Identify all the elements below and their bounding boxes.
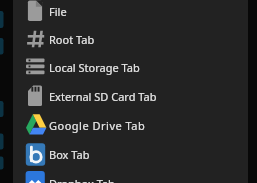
button[interactable]: Google Drive Tab <box>13 111 248 139</box>
button[interactable]: Root Tab <box>13 25 248 53</box>
staticText: File <box>49 4 67 19</box>
staticText: Google Drive Tab <box>49 118 146 133</box>
staticText: Dropbox Tab <box>49 176 115 183</box>
staticText: Box Tab <box>49 147 90 162</box>
staticText: Local Storage Tab <box>49 60 140 75</box>
button[interactable]: Local Storage Tab <box>13 53 248 81</box>
button[interactable]: Box Tab <box>13 140 248 168</box>
button[interactable]: External SD Card Tab <box>13 82 248 110</box>
staticText: Root Tab <box>49 32 95 47</box>
button[interactable]: File <box>13 0 248 25</box>
staticText: External SD Card Tab <box>49 89 157 104</box>
button[interactable]: Dropbox Tab <box>13 169 248 183</box>
